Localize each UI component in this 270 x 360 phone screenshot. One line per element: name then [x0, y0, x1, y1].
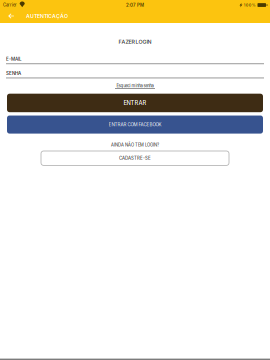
button[interactable]: ENTRAR	[7, 94, 263, 112]
button[interactable]: Back	[4, 10, 18, 22]
button[interactable]: Esqueci minha senha	[0, 78, 270, 94]
button[interactable]: CADASTRE-SE	[41, 151, 229, 165]
staticText: 2:07 PM	[126, 2, 144, 8]
button[interactable]: ENTRAR COM FACEBOOK	[7, 115, 263, 134]
staticText: ENTRAR COM FACEBOOK	[108, 122, 161, 127]
staticText: FAZER LOGIN	[118, 38, 151, 45]
staticText: CADASTRE-SE	[119, 155, 151, 161]
staticText: Esqueci minha senha	[116, 83, 153, 88]
staticText: SENHA	[6, 71, 21, 76]
staticText: Carrier	[3, 3, 17, 8]
staticText: E-MAIL	[6, 56, 22, 62]
staticText: 100%	[244, 3, 256, 7]
staticText: ENTRAR	[123, 99, 146, 106]
staticText: AINDA NÃO TEM LOGIN?	[111, 143, 159, 148]
staticText: AUTENTICAÇÃO	[26, 13, 68, 19]
